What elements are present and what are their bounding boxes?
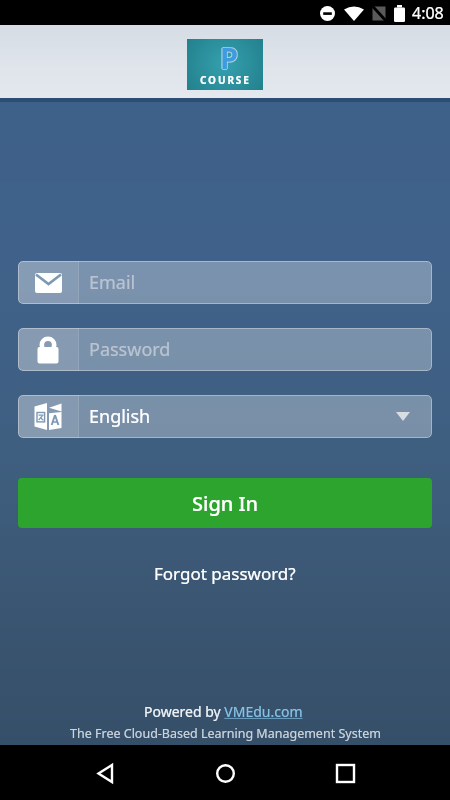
button[interactable]: Sign In xyxy=(18,478,432,528)
staticText: P xyxy=(220,38,239,77)
staticText: Sign In xyxy=(192,490,259,517)
button[interactable] xyxy=(321,749,369,797)
staticText: English xyxy=(89,404,151,429)
button[interactable]: Forgot password? xyxy=(146,558,304,589)
button[interactable]: Email xyxy=(18,261,432,304)
staticText: P xyxy=(221,38,240,77)
staticText: P xyxy=(220,37,239,76)
staticText: P xyxy=(219,38,238,77)
staticText: P xyxy=(220,39,239,78)
staticText: 4:08 xyxy=(412,2,444,24)
button[interactable]: English xyxy=(18,395,432,438)
button[interactable] xyxy=(81,749,129,797)
staticText: Forgot password? xyxy=(154,562,296,585)
staticText: Email xyxy=(89,270,136,295)
staticText: Powered by VMEdu.com xyxy=(144,702,307,721)
staticText: COURSE xyxy=(200,73,251,87)
button[interactable]: Powered by VMEdu.com xyxy=(144,702,307,721)
staticText: The Free Cloud-Based Learning Management… xyxy=(70,725,381,742)
button[interactable] xyxy=(201,749,249,797)
staticText: Password xyxy=(89,337,171,362)
button[interactable]: Password xyxy=(18,328,432,371)
